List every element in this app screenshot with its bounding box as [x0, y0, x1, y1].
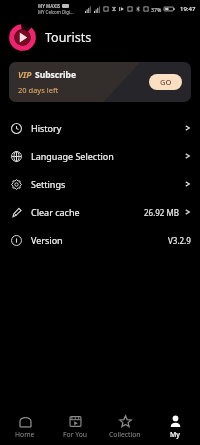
staticText: MY MAXIS — [38, 3, 61, 9]
button[interactable]: Collection — [100, 413, 150, 441]
button[interactable]: Language Selection — [0, 142, 200, 170]
staticText: Version — [31, 234, 63, 246]
staticText: Tourists — [45, 29, 92, 46]
staticText: Language Selection — [31, 150, 114, 162]
staticText: Home — [15, 430, 35, 439]
staticText: Settings — [31, 178, 66, 190]
staticText: 37% — [151, 6, 162, 13]
staticText: MY Celcom Digi... — [38, 9, 74, 15]
staticText: Subscribe — [35, 69, 77, 81]
staticText: Collection — [109, 430, 141, 439]
staticText: 19:47 — [180, 5, 196, 13]
staticText: V3.2.9 — [168, 235, 191, 246]
staticText: GO — [160, 77, 172, 87]
staticText: 26.92 MB — [144, 207, 179, 218]
staticText: For You — [63, 430, 88, 439]
staticText: Clear cache — [31, 206, 80, 218]
button[interactable]: My — [150, 413, 200, 441]
button[interactable]: Settings — [0, 170, 200, 198]
staticText: 20 days left — [18, 85, 59, 95]
staticText: My — [170, 430, 180, 439]
button[interactable]: Home — [0, 413, 50, 441]
button[interactable]: GO — [149, 74, 182, 90]
button[interactable]: Version — [0, 226, 200, 254]
button[interactable]: Clear cache — [0, 198, 200, 226]
button[interactable]: For You — [50, 413, 100, 441]
staticText: History — [31, 122, 62, 134]
button[interactable]: VIP — [9, 62, 191, 102]
staticText: VIP — [18, 69, 32, 81]
button[interactable]: History — [0, 114, 200, 142]
